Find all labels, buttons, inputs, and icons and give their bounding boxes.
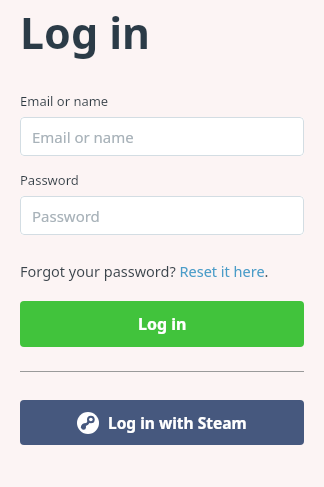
staticText: Password [32,206,100,226]
button[interactable]: Password [20,196,304,235]
staticText: Email or name [20,92,109,110]
staticText: Log in [20,3,151,62]
other: Steam [77,412,99,434]
button[interactable]: Log in [20,301,304,347]
staticText: Email or name [32,127,134,147]
staticText: Log in [138,313,187,335]
staticText: Forgot your password? Reset it here. [20,261,269,281]
staticText: Log in with Steam [108,412,247,433]
button[interactable]: Forgot your password? Reset it here. [20,261,269,281]
button[interactable]: Email or name [20,117,304,156]
button[interactable]: Steam [20,400,304,445]
staticText: Password [20,171,79,189]
